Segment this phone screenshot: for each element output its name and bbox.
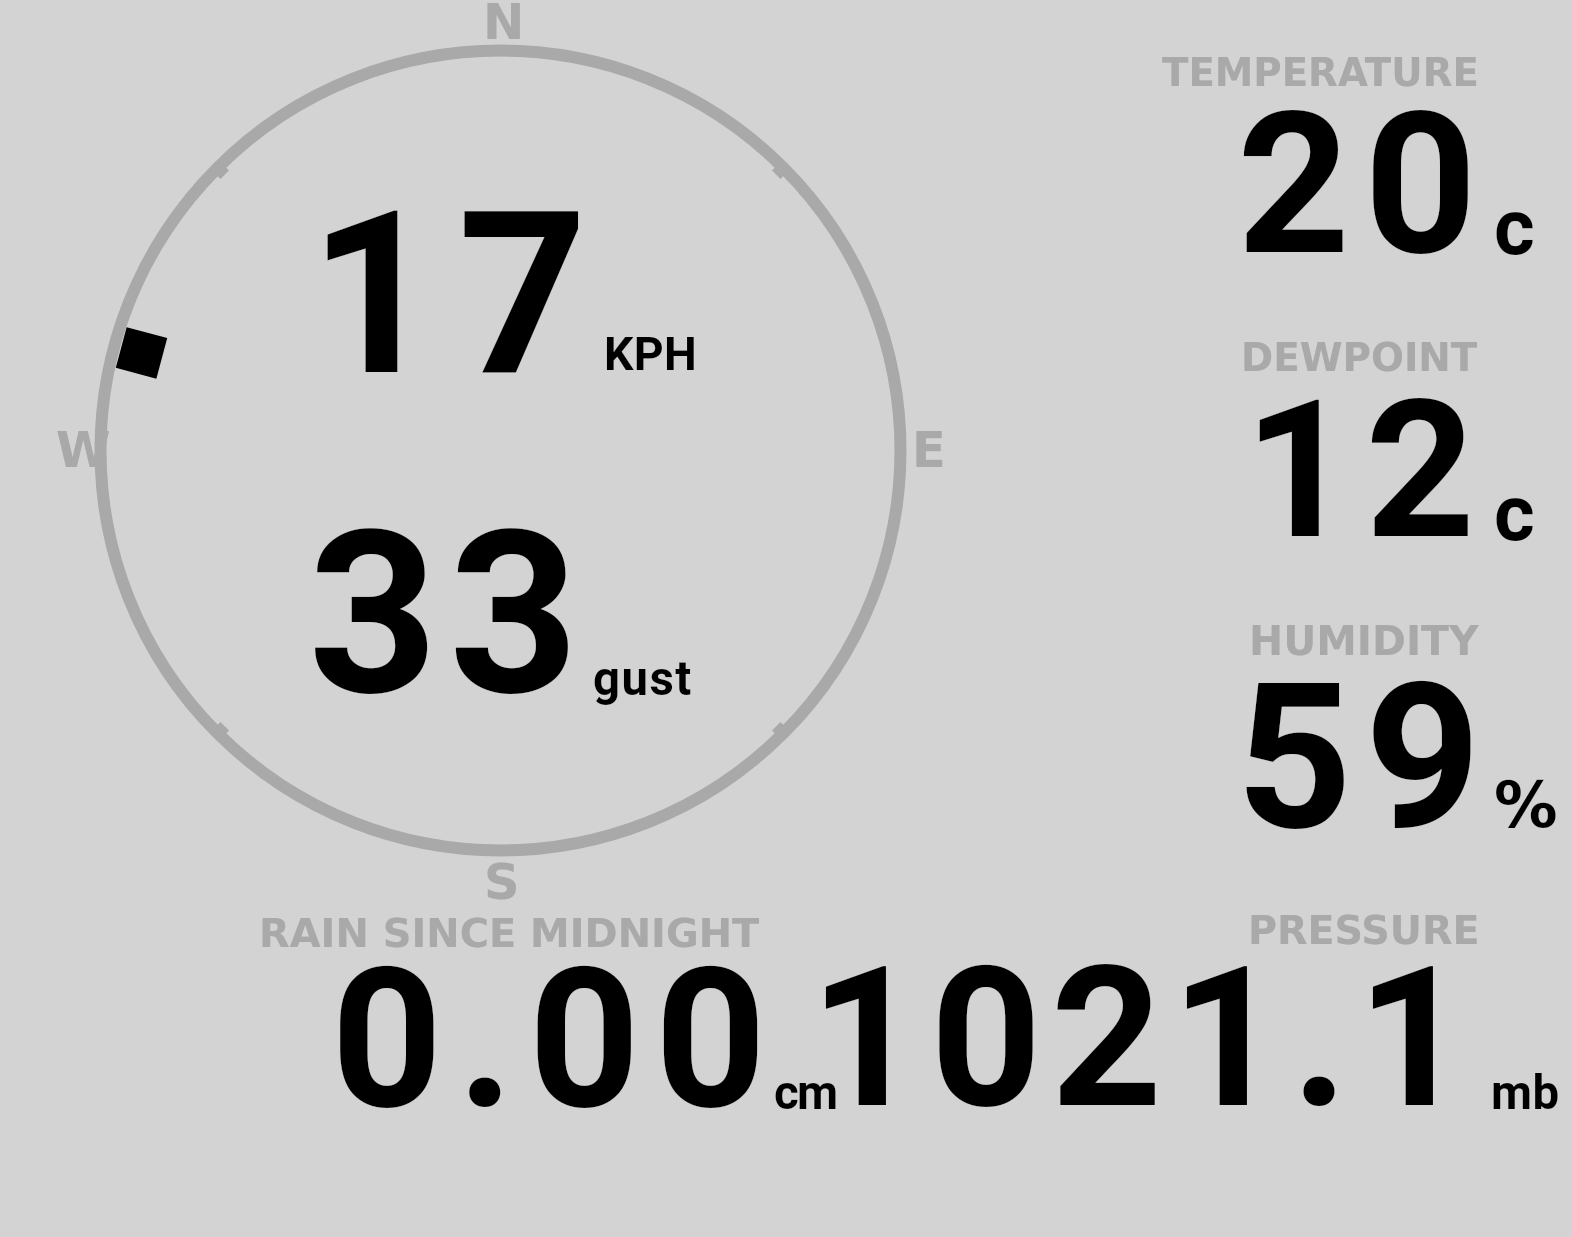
staticText: c bbox=[1494, 182, 1535, 273]
staticText: E bbox=[912, 421, 946, 479]
staticText: N bbox=[483, 0, 525, 51]
staticText: 12 bbox=[1244, 358, 1487, 582]
staticText: 20 bbox=[1237, 69, 1492, 300]
staticText: % bbox=[1494, 768, 1558, 842]
staticText: HUMIDITY bbox=[1249, 617, 1479, 664]
staticText: TEMPERATURE bbox=[1162, 50, 1479, 95]
staticText: W bbox=[56, 421, 111, 479]
staticText: 59 bbox=[1236, 639, 1494, 876]
staticText: 17 bbox=[309, 162, 607, 427]
staticText: RAIN SINCE MIDNIGHT bbox=[259, 910, 760, 956]
staticText: KPH bbox=[604, 327, 698, 381]
button[interactable]: Temperature 20 degrees Celsius bbox=[1160, 45, 1540, 260]
button[interactable]: Humidity 59 percent bbox=[1160, 613, 1560, 831]
staticText: 1021.1 bbox=[810, 925, 1478, 1153]
staticText: S bbox=[484, 853, 520, 911]
button[interactable]: Rain since midnight 0.00 cm bbox=[258, 905, 848, 1115]
staticText: gust bbox=[593, 651, 693, 706]
staticText: 0.00 bbox=[331, 926, 781, 1154]
button[interactable]: Wind gust 33 bbox=[310, 520, 700, 710]
staticText: cm bbox=[774, 1065, 837, 1121]
button[interactable]: Wind direction compass, west north west bbox=[80, 30, 920, 870]
button[interactable]: Dewpoint 12 degrees Celsius bbox=[1160, 330, 1540, 545]
staticText: DEWPOINT bbox=[1241, 335, 1478, 380]
button[interactable]: Wind speed 17 KPH bbox=[320, 200, 700, 380]
staticText: 33 bbox=[308, 481, 590, 747]
staticText: PRESSURE bbox=[1248, 907, 1480, 953]
staticText: c bbox=[1494, 468, 1535, 559]
staticText: mb bbox=[1491, 1065, 1560, 1121]
button[interactable]: Pressure 1021.1 millibars bbox=[850, 905, 1565, 1115]
